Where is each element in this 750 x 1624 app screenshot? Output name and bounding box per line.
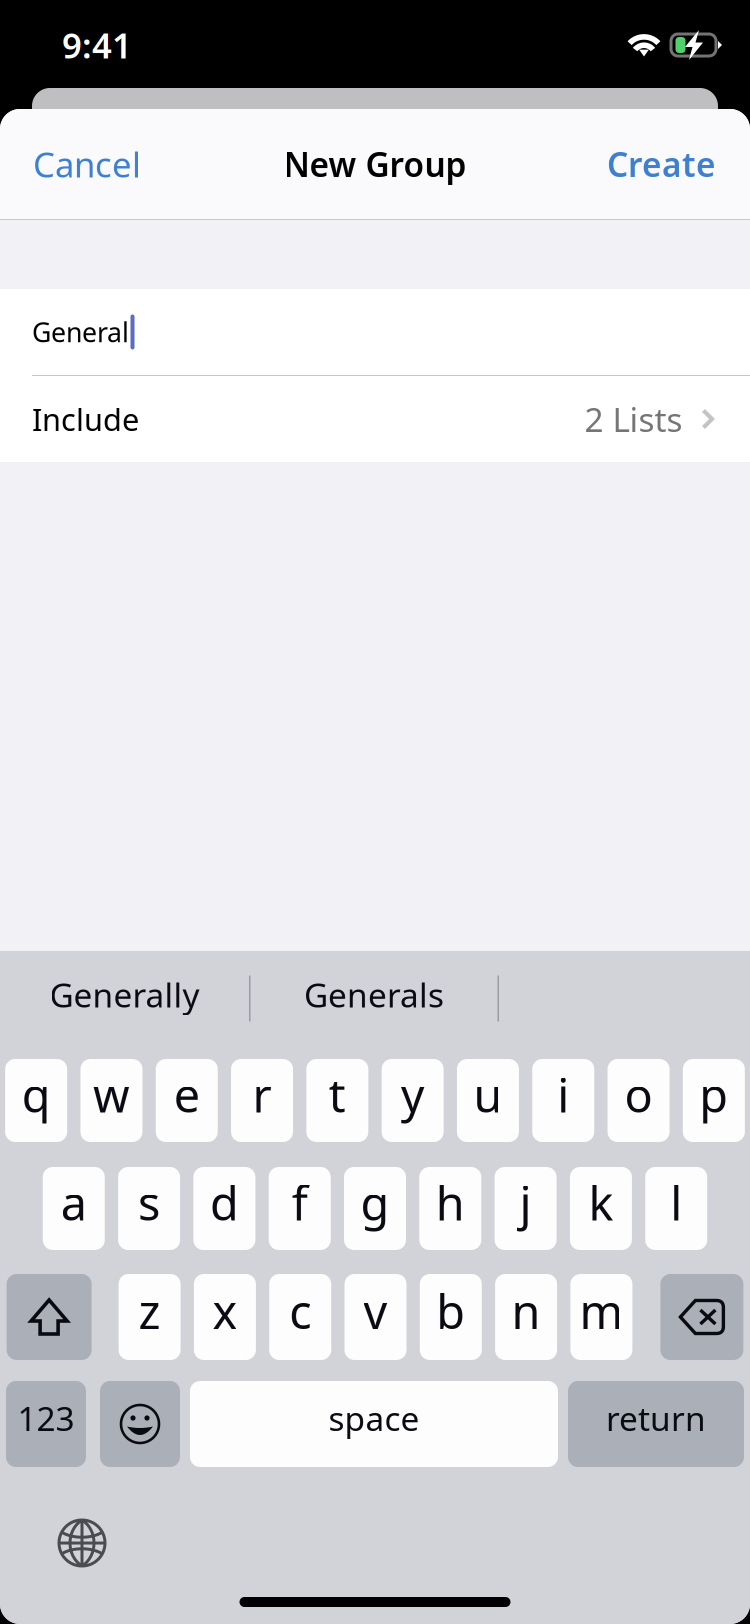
button[interactable]: e bbox=[156, 1059, 218, 1142]
staticText: w bbox=[93, 1063, 130, 1125]
staticText: return bbox=[606, 1396, 706, 1440]
staticText: space bbox=[328, 1396, 419, 1440]
button[interactable]: y bbox=[382, 1059, 444, 1142]
staticText: x bbox=[212, 1280, 237, 1342]
button[interactable]: z bbox=[119, 1274, 181, 1360]
button[interactable]: h bbox=[419, 1167, 481, 1250]
staticText: e bbox=[174, 1063, 200, 1125]
button[interactable]: return bbox=[568, 1381, 744, 1467]
staticText: General bbox=[32, 314, 129, 350]
staticText: k bbox=[588, 1171, 613, 1233]
staticText: v bbox=[363, 1280, 387, 1342]
staticText: o bbox=[624, 1063, 652, 1125]
staticText: c bbox=[289, 1280, 311, 1342]
button[interactable]: Shift bbox=[7, 1274, 92, 1360]
button[interactable]: r bbox=[231, 1059, 293, 1142]
staticText: New Group bbox=[283, 142, 466, 186]
button[interactable]: s bbox=[118, 1167, 180, 1250]
staticText: a bbox=[61, 1171, 87, 1233]
button[interactable]: 123 bbox=[6, 1381, 86, 1467]
button[interactable]: u bbox=[457, 1059, 519, 1142]
staticText: u bbox=[473, 1063, 502, 1125]
staticText: y bbox=[401, 1063, 425, 1125]
button[interactable]: Cancel bbox=[0, 109, 174, 219]
button[interactable]: space bbox=[190, 1381, 558, 1467]
button[interactable]: g bbox=[344, 1167, 406, 1250]
button[interactable]: Generals bbox=[250, 951, 497, 1046]
button[interactable]: Delete bbox=[660, 1274, 743, 1360]
button[interactable]: j bbox=[495, 1167, 557, 1250]
button[interactable]: n bbox=[495, 1274, 557, 1360]
button[interactable]: i bbox=[532, 1059, 594, 1142]
button[interactable]: Next keyboard bbox=[54, 1518, 110, 1568]
button[interactable]: k bbox=[570, 1167, 632, 1250]
staticText: m bbox=[579, 1280, 623, 1342]
staticText: Cancel bbox=[33, 141, 141, 187]
staticText: s bbox=[138, 1171, 160, 1233]
staticText: h bbox=[436, 1171, 465, 1233]
button[interactable]: v bbox=[344, 1274, 406, 1360]
button[interactable]: x bbox=[194, 1274, 256, 1360]
button[interactable]: w bbox=[80, 1059, 142, 1142]
staticText: p bbox=[699, 1063, 728, 1125]
staticText: Generally bbox=[49, 972, 199, 1017]
staticText: Create bbox=[607, 142, 716, 186]
button[interactable]: p bbox=[683, 1059, 745, 1142]
staticText: Generals bbox=[304, 972, 444, 1017]
staticText: g bbox=[360, 1171, 389, 1233]
staticText: t bbox=[329, 1063, 346, 1125]
button[interactable]: d bbox=[193, 1167, 255, 1250]
button[interactable]: b bbox=[420, 1274, 482, 1360]
button[interactable]: Include bbox=[0, 376, 750, 462]
button[interactable]: o bbox=[607, 1059, 669, 1142]
staticText: j bbox=[520, 1171, 532, 1233]
staticText: 123 bbox=[17, 1396, 74, 1440]
staticText: z bbox=[139, 1280, 161, 1342]
button[interactable]: c bbox=[269, 1274, 331, 1360]
button[interactable]: t bbox=[306, 1059, 368, 1142]
staticText: b bbox=[436, 1280, 465, 1342]
button[interactable]: f bbox=[269, 1167, 331, 1250]
button[interactable]: q bbox=[5, 1059, 67, 1142]
button[interactable]: Create bbox=[573, 109, 750, 219]
button[interactable]: m bbox=[570, 1274, 632, 1360]
staticText: r bbox=[252, 1063, 271, 1125]
button[interactable]: Generally bbox=[0, 951, 249, 1046]
staticText: l bbox=[670, 1171, 682, 1233]
staticText: f bbox=[292, 1171, 308, 1233]
staticText: q bbox=[22, 1063, 51, 1125]
staticText: i bbox=[557, 1063, 569, 1125]
button[interactable]: l bbox=[645, 1167, 707, 1250]
button[interactable]: Emoji bbox=[100, 1381, 180, 1467]
staticText: n bbox=[512, 1280, 541, 1342]
staticText: Include bbox=[32, 399, 139, 439]
staticText: 9:41 bbox=[62, 22, 132, 68]
staticText: d bbox=[210, 1171, 239, 1233]
staticText: 2 Lists bbox=[584, 397, 682, 441]
button[interactable]: a bbox=[43, 1167, 105, 1250]
